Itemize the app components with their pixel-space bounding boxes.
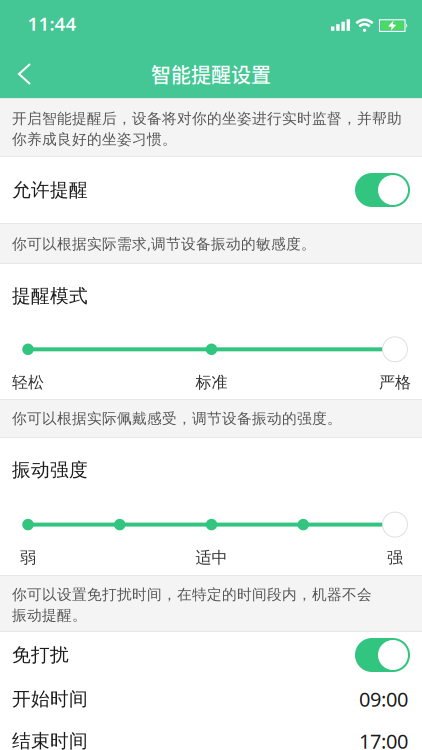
staticText: 免打扰 xyxy=(12,643,69,666)
staticText: 09:00 xyxy=(359,686,408,712)
button[interactable]: 允许提醒 xyxy=(355,173,410,207)
button[interactable]: 开始时间 xyxy=(0,678,422,720)
staticText: 轻松 xyxy=(12,372,44,392)
staticText: 允许提醒 xyxy=(12,178,88,201)
staticText: 标准 xyxy=(195,372,227,392)
button[interactable]: 结束时间 xyxy=(0,720,422,750)
staticText: 开始时间 xyxy=(12,687,88,710)
button[interactable]: 振动强度 xyxy=(0,510,422,540)
staticText: 你可以根据实际需求,调节设备振动的敏感度。 xyxy=(12,234,316,253)
staticText: 强 xyxy=(387,548,403,567)
staticText: 开启智能提醒后，设备将对你的坐姿进行实时监督，并帮助 你养成良好的坐姿习惯。 xyxy=(12,110,402,148)
staticText: 振动强度 xyxy=(12,458,88,481)
staticText: 11:44 xyxy=(27,11,76,36)
staticText: 17:00 xyxy=(359,728,408,750)
staticText: 提醒模式 xyxy=(12,284,88,307)
staticText: 你可以根据实际佩戴感受，调节设备振动的强度。 xyxy=(12,409,342,427)
staticText: 你可以设置免打扰时间，在特定的时间段内，机器不会 振动提醒。 xyxy=(12,586,372,624)
staticText: 弱 xyxy=(20,548,36,567)
button[interactable]: Back xyxy=(12,61,38,87)
staticText: 适中 xyxy=(195,548,227,567)
button[interactable]: 提醒模式 xyxy=(0,334,422,364)
staticText: 智能提醒设置 xyxy=(151,59,271,88)
staticText: 结束时间 xyxy=(12,729,88,750)
button[interactable]: 免打扰 xyxy=(355,638,410,672)
staticText: 严格 xyxy=(379,372,411,392)
